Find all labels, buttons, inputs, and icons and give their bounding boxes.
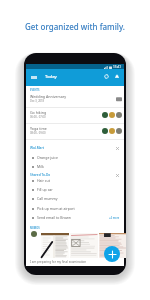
- button[interactable]: Send email to Brown: [26, 214, 124, 221]
- staticText: MEMOS: [30, 226, 40, 230]
- staticText: Call mummy: [37, 196, 58, 201]
- staticText: I am preparing for my final examination: [30, 260, 87, 264]
- button[interactable]: Dismiss: [114, 145, 120, 151]
- button[interactable]: Yoga time: [26, 124, 124, 137]
- staticText: Milk: [37, 164, 44, 169]
- staticText: 08:00 - 09:00: [30, 131, 46, 135]
- staticText: Dec 3, 2018: [30, 99, 45, 103]
- button[interactable]: Go hiking: [26, 108, 124, 121]
- staticText: +4 more: [109, 216, 120, 220]
- button[interactable]: Sync: [101, 71, 111, 81]
- staticText: Hair cut: [37, 178, 50, 183]
- button[interactable]: Hair cut: [26, 177, 124, 184]
- button[interactable]: Milk: [26, 163, 124, 170]
- button[interactable]: Add: [104, 246, 120, 262]
- staticText: 15:41: [113, 65, 122, 69]
- staticText: Get organized with family.: [0, 21, 150, 32]
- staticText: Fill up car: [37, 187, 53, 192]
- staticText: Wal-Mart: [30, 146, 44, 150]
- button[interactable]: Memo photo 2: [70, 233, 98, 258]
- button[interactable]: Dismiss: [114, 172, 120, 178]
- staticText: Send email to Brown: [37, 215, 71, 220]
- button[interactable]: Notifications: [112, 71, 122, 81]
- staticText: Shared To-Do: [30, 173, 51, 177]
- staticText: Go hiking: [30, 110, 47, 115]
- button[interactable]: Wedding Anniversary: [26, 92, 124, 105]
- button[interactable]: Memo photo 3: [99, 233, 126, 258]
- staticText: Pick up mum at airport: [37, 206, 75, 211]
- button[interactable]: I am preparing for my final examination: [26, 259, 124, 265]
- button[interactable]: Call mummy: [26, 195, 124, 202]
- staticText: 06:00 - 07:00: [30, 115, 46, 119]
- button[interactable]: Pick up mum at airport: [26, 205, 124, 212]
- button[interactable]: Memo photo 1: [41, 233, 69, 258]
- staticText: EVENTS: [30, 88, 40, 92]
- staticText: Wedding Anniversary: [30, 94, 67, 99]
- button[interactable]: Fill up car: [26, 186, 124, 193]
- staticText: Orange juice: [37, 155, 58, 160]
- button[interactable]: Orange juice: [26, 154, 124, 161]
- button[interactable]: Menu: [29, 72, 39, 82]
- staticText: Today: [45, 74, 57, 80]
- staticText: Yoga time: [30, 126, 47, 131]
